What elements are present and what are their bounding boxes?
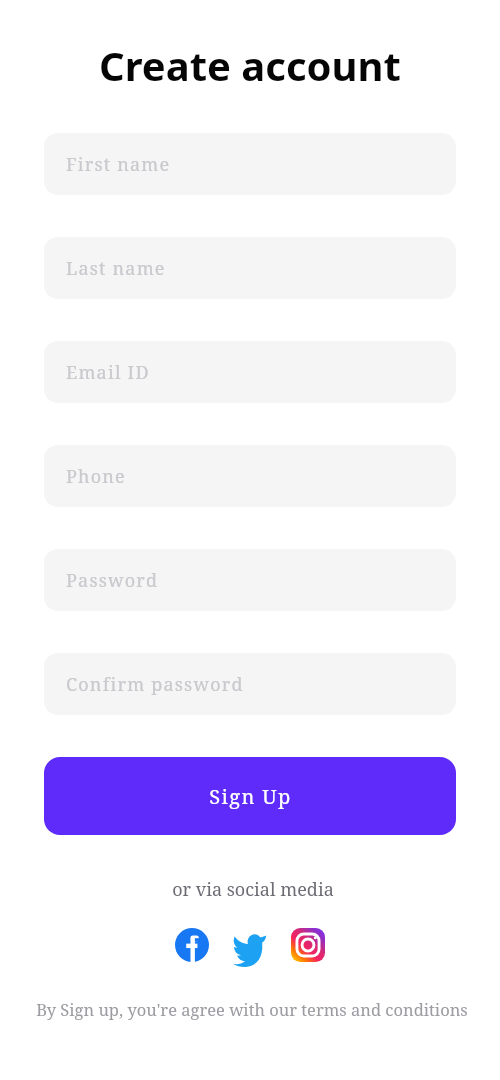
staticText: First name [66, 152, 171, 177]
staticText: Create account [0, 38, 500, 92]
staticText: Last name [66, 256, 166, 281]
button[interactable]: Sign up with Twitter [233, 928, 267, 962]
button[interactable]: Email ID [44, 341, 456, 403]
button[interactable]: Sign up with Instagram [291, 928, 325, 962]
staticText: Password [66, 568, 159, 593]
staticText: Phone [66, 464, 126, 489]
button[interactable]: Sign Up [44, 757, 456, 835]
staticText: By Sign up, you're agree with our terms … [4, 998, 500, 1020]
button[interactable]: Confirm password [44, 653, 456, 715]
button[interactable]: Sign up with Facebook [175, 928, 209, 962]
staticText: Sign Up [209, 783, 292, 810]
staticText: Email ID [66, 360, 150, 385]
button[interactable]: First name [44, 133, 456, 195]
button[interactable]: Phone [44, 445, 456, 507]
staticText: Confirm password [66, 672, 244, 697]
button[interactable]: Last name [44, 237, 456, 299]
button[interactable]: Password [44, 549, 456, 611]
staticText: or via social media [6, 877, 500, 902]
